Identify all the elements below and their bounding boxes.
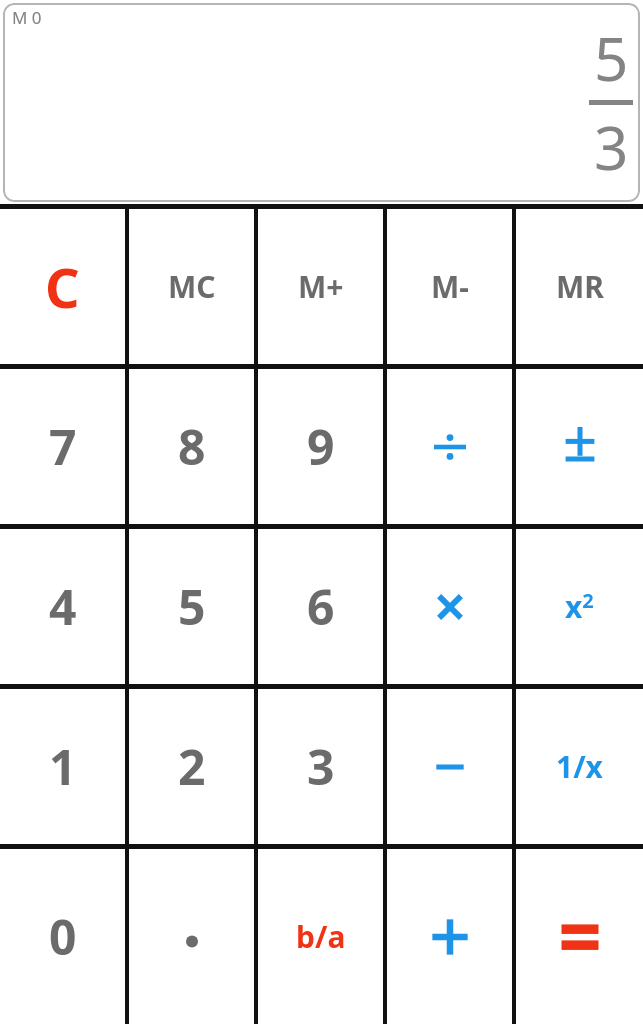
button[interactable]: Divide [387,369,512,524]
button[interactable]: 6 [258,529,383,684]
staticText: 4 [49,574,77,639]
button[interactable]: M+ [258,209,383,364]
staticText: 2 [178,734,206,799]
staticText: 9 [307,414,335,479]
staticText: C [45,250,80,324]
button[interactable]: MR [516,209,643,364]
button[interactable]: 0 [0,849,125,1024]
staticText: 3 [307,734,335,799]
button[interactable]: 1 [0,689,125,844]
button[interactable]: 9 [258,369,383,524]
staticText: MR [556,266,604,307]
button[interactable]: Plus [387,849,512,1024]
staticText: 7 [49,414,77,479]
staticText: b/a [296,916,346,957]
staticText: M 0 [12,6,42,29]
button[interactable]: 4 [0,529,125,684]
button[interactable]: Decimal point [129,849,254,1024]
staticText: 8 [178,414,206,479]
button[interactable]: Minus [387,689,512,844]
staticText: M+ [298,266,344,307]
staticText: 5 [594,17,629,99]
button[interactable]: 1/x [516,689,643,844]
staticText: 3 [594,106,629,188]
staticText: 5 [178,574,206,639]
button[interactable]: M 0 [3,3,640,202]
button[interactable]: M- [387,209,512,364]
staticText: 1/x [556,746,603,787]
button[interactable]: 7 [0,369,125,524]
button[interactable]: 3 [258,689,383,844]
button[interactable]: C [0,209,125,364]
button[interactable]: Multiply [387,529,512,684]
button[interactable]: 8 [129,369,254,524]
staticText: M- [431,266,469,307]
button[interactable]: Square [516,529,643,684]
staticText: MC [168,266,216,307]
button[interactable]: b/a [258,849,383,1024]
staticText: x2 [565,586,594,627]
button[interactable]: Equals [516,849,643,1024]
staticText: 6 [307,574,335,639]
button[interactable]: 2 [129,689,254,844]
button[interactable]: 5 [129,529,254,684]
button[interactable]: Plus minus [516,369,643,524]
staticText: 0 [49,904,77,969]
staticText: 1 [49,734,77,799]
button[interactable]: MC [129,209,254,364]
